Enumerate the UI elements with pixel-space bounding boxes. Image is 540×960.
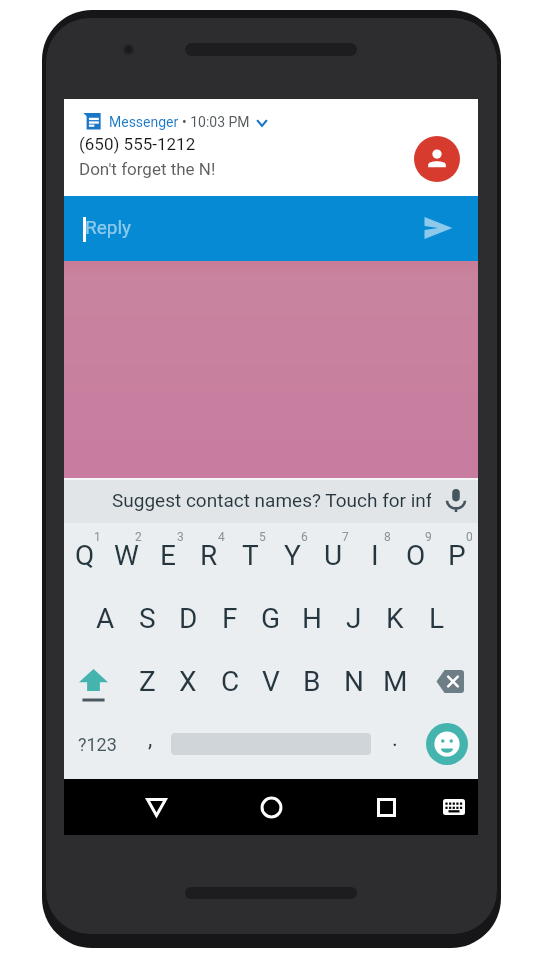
- staticText: 4: [218, 530, 225, 544]
- button[interactable]: .: [374, 713, 415, 775]
- staticText: Reply: [85, 216, 132, 238]
- staticText: M: [383, 665, 408, 698]
- staticText: W: [114, 539, 139, 572]
- staticText: T: [242, 539, 259, 572]
- staticText: B: [303, 665, 321, 698]
- staticText: R: [200, 539, 218, 572]
- staticText: • 10:03 PM: [182, 114, 250, 130]
- staticText: .: [392, 726, 398, 752]
- staticText: 0: [466, 530, 473, 544]
- button[interactable]: Send: [416, 208, 460, 248]
- button[interactable]: [271, 524, 312, 586]
- staticText: V: [262, 665, 280, 698]
- staticText: P: [448, 539, 466, 572]
- staticText: C: [221, 665, 240, 698]
- button[interactable]: [416, 587, 457, 649]
- button[interactable]: Back: [136, 787, 176, 827]
- staticText: A: [96, 602, 115, 635]
- button[interactable]: Emoji: [415, 713, 478, 775]
- button[interactable]: ?123: [64, 713, 130, 775]
- button[interactable]: [147, 524, 188, 586]
- staticText: 7: [342, 530, 349, 544]
- staticText: 9: [425, 530, 432, 544]
- staticText: Q: [75, 539, 95, 572]
- staticText: H: [302, 602, 322, 635]
- staticText: 1: [94, 530, 101, 544]
- button[interactable]: Recents: [366, 787, 406, 827]
- staticText: 6: [301, 530, 308, 544]
- staticText: Y: [284, 539, 301, 572]
- button[interactable]: [333, 587, 374, 649]
- staticText: I: [371, 539, 379, 572]
- button[interactable]: [171, 713, 371, 775]
- staticText: 2: [135, 530, 142, 544]
- button[interactable]: [250, 587, 291, 649]
- button[interactable]: [209, 587, 250, 649]
- staticText: Z: [139, 665, 156, 698]
- staticText: L: [429, 602, 445, 635]
- staticText: G: [261, 602, 281, 635]
- staticText: J: [346, 602, 362, 635]
- button[interactable]: [292, 587, 333, 649]
- button[interactable]: Shift: [64, 650, 122, 712]
- button[interactable]: ,: [130, 713, 171, 775]
- button[interactable]: [168, 650, 209, 712]
- staticText: Suggest contact names? Touch for info: [112, 489, 431, 511]
- button[interactable]: [105, 524, 146, 586]
- button[interactable]: [312, 524, 353, 586]
- button[interactable]: Voice input: [446, 489, 466, 512]
- staticText: ?123: [78, 734, 117, 755]
- staticText: Messenger: [109, 114, 179, 130]
- button[interactable]: [354, 524, 395, 586]
- button[interactable]: [168, 587, 209, 649]
- button[interactable]: [395, 524, 436, 586]
- staticText: F: [222, 602, 238, 635]
- button[interactable]: Reply: [64, 196, 478, 261]
- button[interactable]: Switch keyboard: [434, 787, 474, 827]
- staticText: Don't forget the N!: [79, 159, 216, 179]
- staticText: O: [406, 539, 426, 572]
- button[interactable]: [250, 650, 291, 712]
- button[interactable]: [209, 650, 250, 712]
- staticText: X: [179, 665, 197, 698]
- staticText: 3: [177, 530, 184, 544]
- button[interactable]: [85, 587, 126, 649]
- button[interactable]: Backspace: [420, 650, 478, 712]
- staticText: ,: [148, 726, 153, 752]
- staticText: K: [386, 602, 404, 635]
- button[interactable]: [64, 524, 105, 586]
- button[interactable]: [126, 587, 167, 649]
- button[interactable]: [230, 524, 271, 586]
- staticText: D: [179, 602, 198, 635]
- button[interactable]: [375, 650, 416, 712]
- staticText: S: [139, 602, 156, 635]
- button[interactable]: [188, 524, 229, 586]
- button[interactable]: [292, 650, 333, 712]
- button[interactable]: [333, 650, 374, 712]
- staticText: (650) 555-1212: [79, 134, 196, 154]
- button[interactable]: Home: [251, 787, 291, 827]
- button[interactable]: [375, 587, 416, 649]
- staticText: 5: [259, 530, 266, 544]
- staticText: E: [160, 539, 176, 572]
- button[interactable]: Contact avatar: [414, 136, 460, 182]
- button[interactable]: [437, 524, 478, 586]
- staticText: U: [324, 539, 343, 572]
- button[interactable]: [126, 650, 167, 712]
- staticText: 8: [384, 530, 391, 544]
- staticText: N: [344, 665, 364, 698]
